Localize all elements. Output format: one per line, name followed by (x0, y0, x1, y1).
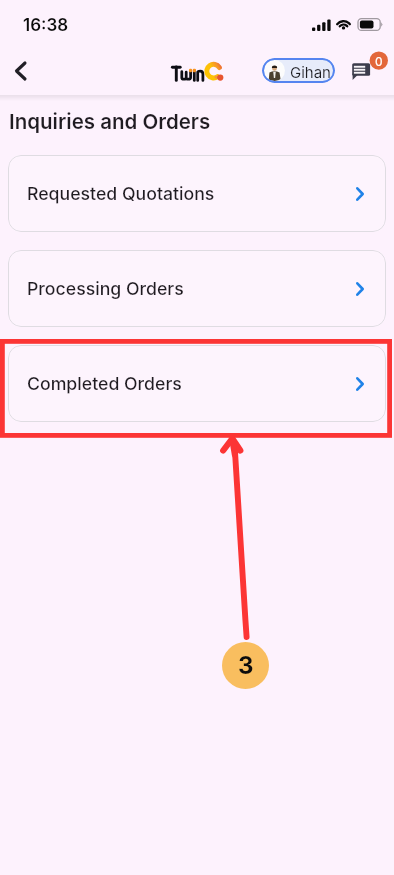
staticText: Completed Orders (27, 373, 182, 394)
button[interactable]: Back (2, 53, 38, 89)
button[interactable]: Requested Quotations (8, 155, 386, 232)
button[interactable]: Processing Orders (8, 250, 386, 327)
button[interactable]: Gihan (262, 58, 335, 83)
staticText: 16:38 (23, 15, 69, 36)
button[interactable]: Completed Orders (8, 345, 386, 422)
staticText: Inquiries and Orders (9, 109, 211, 134)
staticText: 0 (375, 54, 383, 68)
button[interactable]: Messages (347, 52, 387, 86)
staticText: Requested Quotations (27, 183, 215, 204)
staticText: Gihan (290, 63, 331, 81)
staticText: Processing Orders (27, 278, 184, 299)
staticText: 3 (238, 651, 254, 680)
